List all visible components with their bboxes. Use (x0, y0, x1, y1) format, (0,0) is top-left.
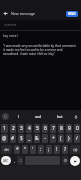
button[interactable]: 0 (74, 124, 80, 133)
button[interactable]: Send (70, 156, 80, 166)
staticText: ) (68, 135, 70, 142)
staticText: hey raine ! (3, 34, 19, 38)
button[interactable]: ' (30, 145, 36, 154)
button[interactable]: Emoji keyboard (2, 113, 9, 120)
staticText: # (11, 135, 15, 142)
button[interactable]: - (42, 134, 48, 143)
button[interactable]: 5 (34, 124, 40, 133)
staticText: 0 (76, 125, 79, 132)
button[interactable]: but (56, 113, 64, 120)
button[interactable]: 3 (18, 124, 24, 133)
button[interactable]: ( (58, 134, 64, 143)
button[interactable]: ABC (1, 156, 11, 165)
staticText: ! (56, 146, 58, 153)
button[interactable]: ; (46, 145, 52, 154)
button[interactable]: chaneris (0, 20, 81, 30)
staticText: 2 (12, 125, 15, 132)
button[interactable]: $ (18, 134, 24, 143)
button[interactable]: / (74, 134, 80, 143)
staticText: _ (28, 135, 31, 142)
button[interactable]: I (17, 113, 21, 120)
staticText: but (57, 114, 63, 119)
button[interactable]: =\< (1, 145, 12, 154)
button[interactable]: 4 (26, 124, 32, 133)
button[interactable]: # (10, 134, 16, 143)
staticText: 5 (36, 125, 39, 132)
button[interactable]: 8 (58, 124, 64, 133)
button[interactable]: 1 (1, 124, 8, 133)
button[interactable]: 6 (42, 124, 48, 133)
staticText: & (35, 135, 39, 142)
staticText: , (14, 158, 15, 163)
staticText: - (44, 135, 46, 142)
button[interactable]: Emoji (17, 156, 23, 165)
staticText: and (35, 114, 42, 119)
button[interactable]: ! (54, 145, 60, 154)
staticText: : (40, 146, 42, 153)
staticText: =\< (4, 148, 9, 152)
button[interactable]: : (38, 145, 44, 154)
staticText: 3 (20, 125, 23, 132)
staticText: + (52, 135, 55, 142)
button[interactable]: 7 (50, 124, 56, 133)
staticText: 4 (28, 125, 31, 132)
button[interactable]: _ (26, 134, 32, 143)
staticText: * (16, 146, 19, 153)
button[interactable]: Voice input (72, 113, 79, 120)
staticText: 1 (3, 125, 6, 132)
staticText: ( (60, 135, 62, 142)
button[interactable]: Emoji picker (62, 156, 68, 165)
button[interactable]: ? (62, 145, 68, 154)
button[interactable]: & (34, 134, 40, 143)
staticText: 7 (52, 125, 55, 132)
staticText: / (76, 135, 78, 142)
staticText: " (24, 146, 26, 153)
button[interactable]: " (22, 145, 28, 154)
staticText: chaneris (4, 23, 17, 27)
staticText: ABC (3, 159, 9, 163)
button[interactable]: ) (66, 134, 72, 143)
button[interactable]: 2 (10, 124, 16, 133)
staticText: $ (20, 135, 23, 142)
staticText: New message (11, 11, 36, 16)
staticText: 6 (44, 125, 47, 132)
button[interactable]: , (13, 156, 15, 165)
staticText: ' (32, 146, 34, 153)
button[interactable]: Backspace (70, 145, 80, 154)
button[interactable]: and (34, 113, 43, 120)
button[interactable]: SEND (66, 11, 78, 17)
staticText: ; (48, 146, 50, 153)
staticText: SEND (68, 12, 76, 16)
button[interactable]: Back (0, 7, 11, 20)
staticText: I (18, 114, 20, 119)
button[interactable]: @ (1, 134, 8, 143)
staticText: @ (2, 135, 7, 142)
button[interactable]: * (14, 145, 20, 154)
staticText: 9 (68, 125, 71, 132)
staticText: ? (64, 146, 67, 153)
button[interactable]: 9 (66, 124, 72, 133)
staticText: "i was made very uncomfortable by that c… (3, 44, 78, 56)
staticText: 8 (60, 125, 63, 132)
button[interactable]: + (50, 134, 56, 143)
